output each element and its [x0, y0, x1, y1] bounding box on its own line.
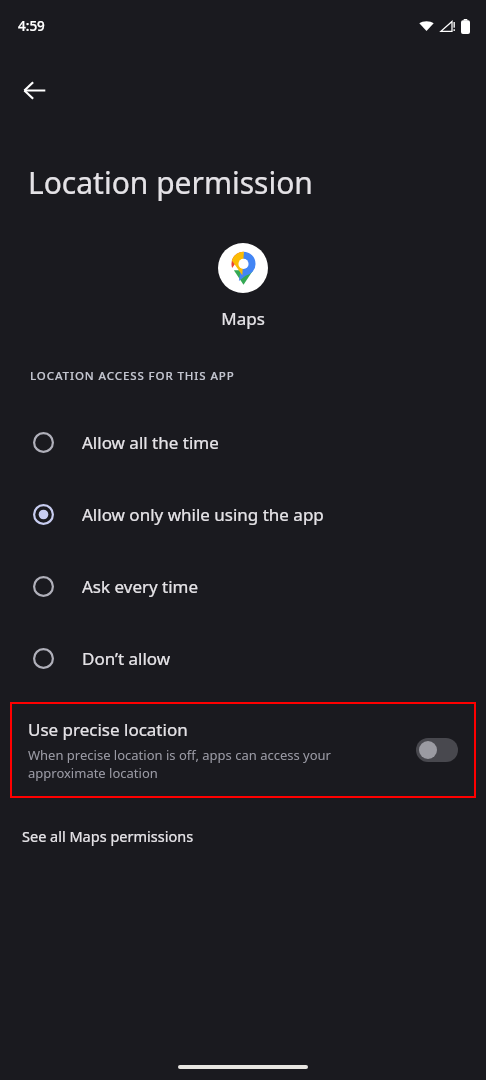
staticText: When precise location is off, apps can a…	[28, 746, 404, 782]
staticText: Allow all the time	[82, 431, 219, 454]
staticText: Allow only while using the app	[82, 503, 324, 526]
staticText: LOCATION ACCESS FOR THIS APP	[30, 368, 235, 384]
button[interactable]: Don’t allow	[0, 622, 486, 694]
staticText: Ask every time	[82, 575, 199, 598]
button[interactable]: Allow only while using the app	[0, 478, 486, 550]
staticText: Use precise location	[28, 718, 188, 741]
staticText: See all Maps permissions	[22, 826, 194, 846]
staticText: Location permission	[28, 162, 313, 203]
staticText: Maps	[221, 307, 265, 330]
button[interactable]: Back	[10, 66, 58, 114]
button[interactable]: Use precise location	[10, 702, 476, 798]
staticText: Don’t allow	[82, 647, 171, 670]
button[interactable]: Allow all the time	[0, 406, 486, 478]
button[interactable]: See all Maps permissions	[0, 820, 486, 852]
staticText: 4:59	[18, 17, 45, 35]
button[interactable]: Ask every time	[0, 550, 486, 622]
